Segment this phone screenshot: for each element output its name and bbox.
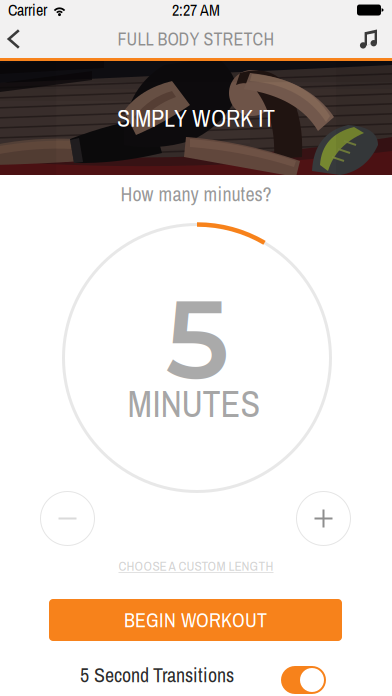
staticText: BEGIN WORKOUT	[124, 606, 267, 633]
button[interactable]: Back	[0, 20, 34, 58]
staticText: FULL BODY STRETCH	[117, 27, 274, 51]
staticText: MINUTES	[127, 380, 260, 428]
staticText: CHOOSE A CUSTOM LENGTH	[118, 557, 273, 575]
staticText: 5 Second Transitions	[80, 661, 234, 688]
button[interactable]: Increase minutes	[296, 491, 351, 546]
staticText: SIMPLY WORK IT	[117, 102, 275, 134]
button[interactable]: 5 Second Transitions	[281, 666, 326, 694]
staticText: Carrier	[8, 0, 47, 21]
button[interactable]: CHOOSE A CUSTOM LENGTH	[118, 557, 273, 575]
button[interactable]: BEGIN WORKOUT	[49, 599, 342, 641]
button[interactable]: Music	[349, 20, 389, 58]
staticText: 5	[165, 272, 229, 406]
button[interactable]: Decrease minutes	[40, 491, 95, 546]
staticText: 2:27 AM	[172, 0, 220, 21]
staticText: How many minutes?	[120, 180, 271, 207]
